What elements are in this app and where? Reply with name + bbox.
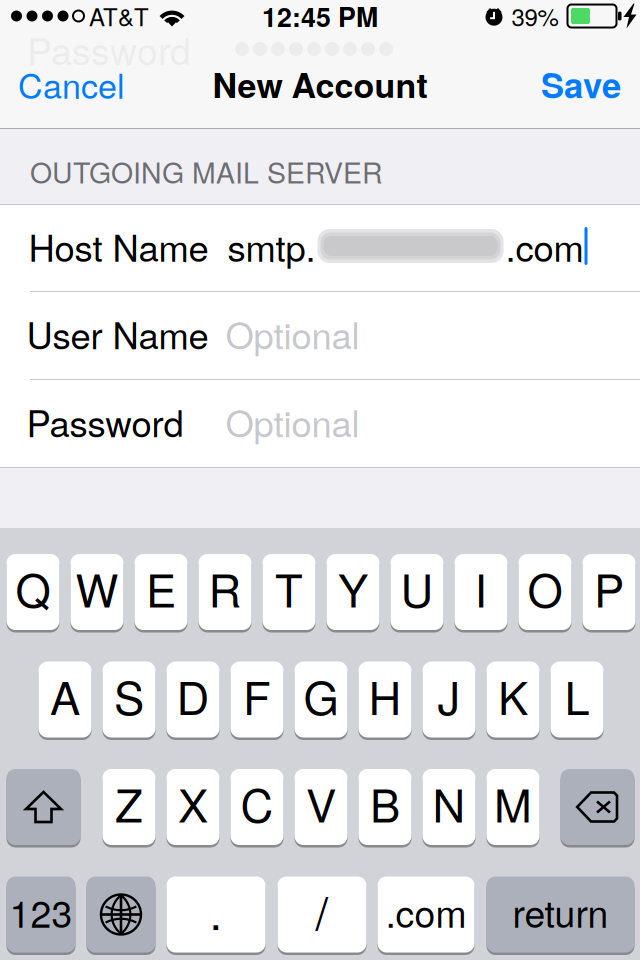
staticText: B xyxy=(370,770,400,835)
staticText: G xyxy=(303,663,338,728)
button[interactable]: D xyxy=(166,660,219,739)
staticText: H xyxy=(368,663,401,728)
button[interactable]: P xyxy=(582,552,635,631)
staticText: Host Name xyxy=(28,220,208,272)
button[interactable]: H xyxy=(358,660,411,739)
staticText: X xyxy=(178,770,208,835)
staticText: .com xyxy=(505,220,583,272)
button[interactable] xyxy=(86,875,155,954)
button[interactable]: U xyxy=(390,552,443,631)
staticText: F xyxy=(243,663,271,728)
staticText: Q xyxy=(15,555,50,620)
staticText: K xyxy=(498,663,528,728)
staticText: S xyxy=(114,663,144,728)
staticText: V xyxy=(306,770,336,835)
button[interactable]: / xyxy=(277,875,366,954)
staticText: .com xyxy=(385,885,466,938)
staticText: I xyxy=(474,555,487,620)
staticText: R xyxy=(208,555,241,620)
button[interactable]: Cancel xyxy=(0,55,154,113)
staticText: Optional xyxy=(225,307,359,359)
button[interactable]: Y xyxy=(326,552,379,631)
staticText: N xyxy=(432,770,465,835)
staticText: 123 xyxy=(9,885,72,938)
button[interactable]: User Name xyxy=(0,292,640,379)
button[interactable]: E xyxy=(134,552,187,631)
staticText: J xyxy=(437,663,460,728)
button[interactable]: X xyxy=(166,767,219,846)
staticText: Password xyxy=(26,395,183,447)
staticText: W xyxy=(75,555,118,620)
button[interactable]: Q xyxy=(6,552,59,631)
staticText: Optional xyxy=(225,395,359,447)
staticText: Z xyxy=(115,770,143,835)
staticText: C xyxy=(240,770,273,835)
staticText: Save xyxy=(541,59,621,109)
button[interactable]: M xyxy=(486,767,539,846)
staticText: L xyxy=(564,663,589,728)
staticText: D xyxy=(176,663,209,728)
staticText: OUTGOING MAIL SERVER xyxy=(30,151,383,192)
button[interactable]: W xyxy=(70,552,123,631)
button[interactable]: L xyxy=(550,660,603,739)
button[interactable]: Z xyxy=(102,767,155,846)
button[interactable]: T xyxy=(262,552,315,631)
button[interactable]: 123 xyxy=(6,875,75,954)
button[interactable]: S xyxy=(102,660,155,739)
staticText: P xyxy=(594,555,624,620)
button[interactable]: Save xyxy=(509,55,640,113)
staticText: / xyxy=(315,878,328,943)
staticText: AT&T xyxy=(89,0,149,33)
staticText: O xyxy=(527,555,562,620)
staticText: T xyxy=(275,555,303,620)
staticText: User Name xyxy=(26,307,208,359)
button[interactable]: O xyxy=(518,552,571,631)
button[interactable]: .com xyxy=(377,875,474,954)
staticText: smtp. xyxy=(227,220,315,272)
button[interactable]: . xyxy=(166,875,265,954)
staticText: 39% xyxy=(511,0,558,33)
button[interactable]: B xyxy=(358,767,411,846)
staticText: M xyxy=(494,770,532,835)
button[interactable]: A xyxy=(38,660,91,739)
button[interactable]: F xyxy=(230,660,283,739)
button[interactable]: Host Name xyxy=(0,205,640,291)
staticText: Password xyxy=(27,22,191,76)
button[interactable]: I xyxy=(454,552,507,631)
staticText: A xyxy=(50,663,80,728)
button[interactable]: C xyxy=(230,767,283,846)
button[interactable] xyxy=(560,767,634,846)
button[interactable] xyxy=(6,767,80,846)
staticText: 12:45 PM xyxy=(262,0,378,35)
staticText: E xyxy=(146,555,176,620)
button[interactable]: R xyxy=(198,552,251,631)
staticText: New Account xyxy=(212,60,427,108)
staticText: U xyxy=(400,555,433,620)
staticText: Cancel xyxy=(18,60,125,108)
button[interactable]: J xyxy=(422,660,475,739)
button[interactable]: G xyxy=(294,660,347,739)
button[interactable]: return xyxy=(486,875,634,954)
button[interactable]: V xyxy=(294,767,347,846)
staticText: return xyxy=(512,885,608,938)
button[interactable]: Password xyxy=(0,380,640,467)
staticText: . xyxy=(209,878,222,943)
button[interactable]: K xyxy=(486,660,539,739)
button[interactable]: N xyxy=(422,767,475,846)
staticText: Y xyxy=(338,555,368,620)
